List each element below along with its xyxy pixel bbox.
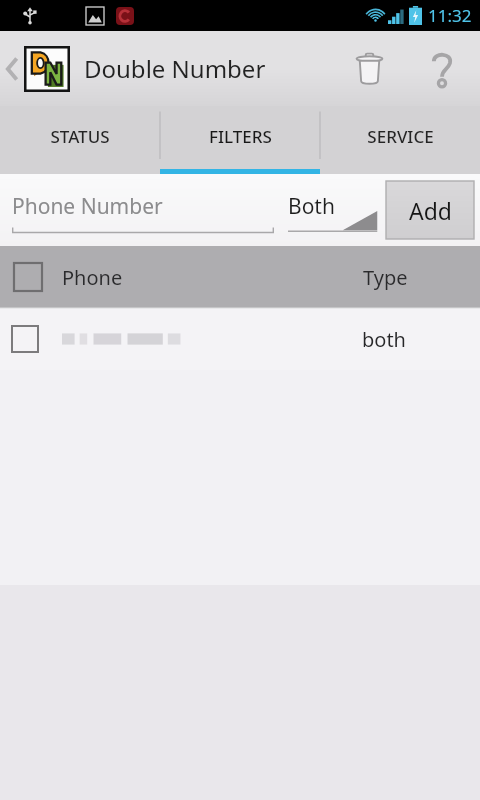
staticText: FILTERS — [209, 125, 272, 148]
button[interactable]: Select row — [12, 326, 38, 352]
staticText: Type — [363, 264, 408, 291]
staticText: Add — [409, 195, 452, 226]
button[interactable]: Select row — [0, 308, 480, 370]
button[interactable]: Help — [404, 31, 480, 106]
button[interactable]: Select all — [14, 263, 42, 291]
button[interactable]: Both — [288, 182, 384, 238]
staticText: both — [362, 326, 406, 353]
button[interactable]: Phone Number — [12, 182, 274, 238]
staticText: Phone — [62, 264, 123, 291]
staticText: Double Number — [84, 52, 266, 85]
staticText: Both — [288, 192, 335, 221]
staticText: 11:32 — [428, 4, 472, 27]
staticText: Phone Number — [12, 192, 163, 221]
staticText: STATUS — [50, 125, 110, 148]
staticText: SERVICE — [367, 125, 434, 148]
button[interactable]: STATUS — [0, 106, 160, 174]
button[interactable]: SERVICE — [320, 106, 480, 174]
button[interactable]: Add — [386, 181, 474, 239]
button[interactable]: Double Number — [0, 31, 266, 106]
button[interactable]: FILTERS — [160, 106, 320, 174]
button[interactable]: Delete — [334, 31, 404, 106]
